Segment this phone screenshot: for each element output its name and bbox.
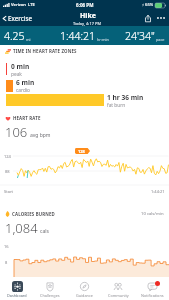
button[interactable]: Challenges: [33, 279, 67, 300]
button[interactable]: Share: [141, 10, 154, 26]
staticText: 88: [5, 169, 10, 174]
staticText: Verizon: [11, 2, 26, 8]
staticText: 0 min: [11, 62, 30, 71]
button[interactable]: Community: [101, 279, 135, 300]
staticText: Start: [4, 189, 13, 194]
staticText: 1,084: [5, 219, 38, 237]
button[interactable]: Notifications: [135, 279, 169, 300]
staticText: cardio: [16, 87, 30, 94]
staticText: 6:06 PM: [76, 2, 94, 8]
staticText: 124: [4, 154, 11, 159]
button[interactable]: Dashboard: [0, 279, 33, 300]
staticText: 128: [78, 149, 85, 154]
staticText: LTE: [28, 2, 35, 8]
staticText: peak: [11, 71, 22, 78]
staticText: 6 min: [16, 78, 35, 87]
staticText: 16: [4, 244, 9, 249]
button[interactable]: More options: [154, 10, 168, 26]
staticText: Hike: [80, 11, 96, 21]
staticText: mi: [26, 37, 31, 42]
staticText: CALORIES BURNED: [12, 211, 55, 217]
staticText: pace: [156, 37, 165, 42]
staticText: cals: [40, 228, 49, 235]
staticText: fat burn: [107, 102, 126, 109]
staticText: 106: [5, 123, 28, 141]
staticText: Notifications: [141, 293, 164, 298]
staticText: Community: [108, 293, 129, 298]
staticText: 24'34": [125, 29, 155, 43]
staticText: 8: [5, 260, 8, 265]
staticText: 10 cals/min: [141, 211, 164, 217]
staticText: hr:min: [97, 37, 109, 42]
staticText: avg bpm: [30, 132, 51, 139]
button[interactable]: Guidance: [67, 279, 101, 300]
staticText: Challenges: [40, 293, 60, 298]
staticText: HEART RATE: [13, 115, 41, 121]
staticText: Dashboard: [7, 293, 27, 298]
staticText: 1 hr 36 min: [107, 93, 144, 102]
staticText: 4.25: [4, 29, 25, 43]
staticText: 65%: [145, 2, 154, 8]
staticText: Guidance: [76, 293, 93, 298]
staticText: TIME IN HEART RATE ZONES: [13, 48, 77, 54]
staticText: Today, 4:17 PM: [73, 21, 102, 26]
button[interactable]: Exercise: [0, 10, 35, 26]
staticText: 1:44:21: [151, 189, 165, 194]
staticText: Exercise: [8, 14, 32, 23]
staticText: 1:44:21: [60, 29, 96, 43]
